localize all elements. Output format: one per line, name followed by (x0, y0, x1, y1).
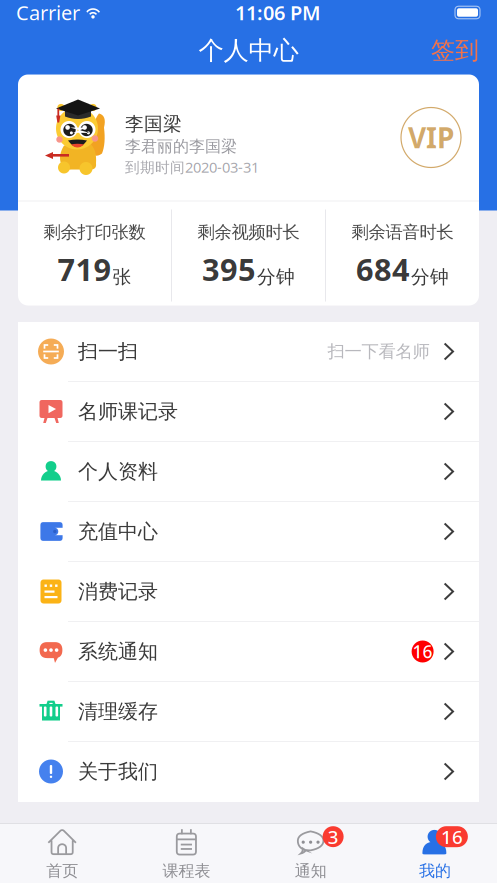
staticText: 剩余语音时长 (351, 221, 453, 243)
staticText: 充值中心 (78, 519, 158, 544)
button[interactable]: 扫一扫 (18, 322, 479, 382)
staticText: 到期时间2020-03-31 (125, 157, 259, 177)
button[interactable]: 3 (248, 823, 373, 883)
staticText: 通知 (295, 861, 327, 881)
staticText: 11:06 PM (235, 0, 321, 26)
button[interactable]: 课程表 (124, 823, 248, 883)
staticText: 名师课记录 (78, 399, 178, 424)
staticText: 719 (57, 249, 111, 289)
staticText: 清理缓存 (78, 699, 158, 724)
button[interactable]: 系统通知 (18, 622, 479, 682)
button[interactable]: 消费记录 (18, 562, 479, 622)
staticText: 分钟 (411, 266, 449, 288)
staticText: 消费记录 (78, 579, 158, 604)
staticText: 剩余打印张数 (43, 221, 145, 243)
staticText: 首页 (46, 861, 78, 881)
staticText: 课程表 (162, 861, 210, 881)
staticText: 李国梁 (125, 112, 182, 135)
staticText: 签到 (431, 36, 479, 65)
staticText: 张 (112, 266, 131, 288)
staticText: 395 (202, 249, 256, 289)
button[interactable]: 名师课记录 (18, 382, 479, 442)
staticText: VIP (408, 119, 454, 156)
button[interactable]: 16 (373, 823, 497, 883)
staticText: 剩余视频时长 (197, 221, 299, 243)
staticText: 李君丽的李国梁 (125, 137, 237, 156)
button[interactable]: 充值中心 (18, 502, 479, 562)
staticText: 个人中心 (198, 35, 298, 66)
button[interactable]: 关于我们 (18, 742, 479, 802)
staticText: 关于我们 (78, 759, 158, 784)
staticText: 684 (356, 249, 410, 289)
staticText: 我的 (419, 861, 451, 881)
button[interactable]: 清理缓存 (18, 682, 479, 742)
staticText: 系统通知 (78, 639, 158, 664)
staticText: 个人资料 (78, 459, 158, 484)
button[interactable]: 个人资料 (18, 442, 479, 502)
staticText: 扫一下看名师 (328, 341, 430, 362)
button[interactable]: 签到 (413, 28, 497, 72)
staticText: 16 (441, 824, 463, 849)
staticText: 3 (328, 824, 339, 849)
staticText: Carrier (16, 0, 80, 26)
button[interactable]: 首页 (0, 823, 124, 883)
staticText: 16 (413, 640, 433, 663)
staticText: 扫一扫 (78, 339, 138, 364)
staticText: 分钟 (257, 266, 295, 288)
